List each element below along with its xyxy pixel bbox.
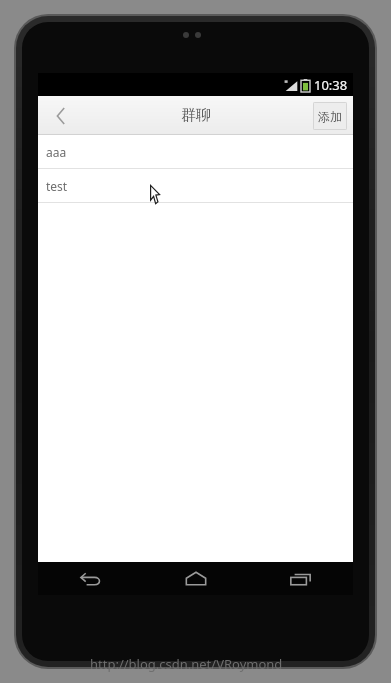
button[interactable]: Back xyxy=(38,96,84,135)
staticText: 群聊 xyxy=(181,106,211,125)
staticText: 10:38 xyxy=(314,76,348,94)
staticText: aaa xyxy=(46,144,67,160)
button[interactable]: Home xyxy=(143,562,248,595)
staticText: 添加 xyxy=(318,109,342,124)
button[interactable]: test xyxy=(38,169,353,202)
button[interactable]: aaa xyxy=(38,135,353,168)
button[interactable]: 添加 xyxy=(313,102,347,130)
staticText: test xyxy=(46,178,68,194)
staticText: http://blog.csdn.net/VRoymond xyxy=(90,655,283,673)
button[interactable]: Recent apps xyxy=(248,562,353,595)
button[interactable]: Back xyxy=(38,562,143,595)
